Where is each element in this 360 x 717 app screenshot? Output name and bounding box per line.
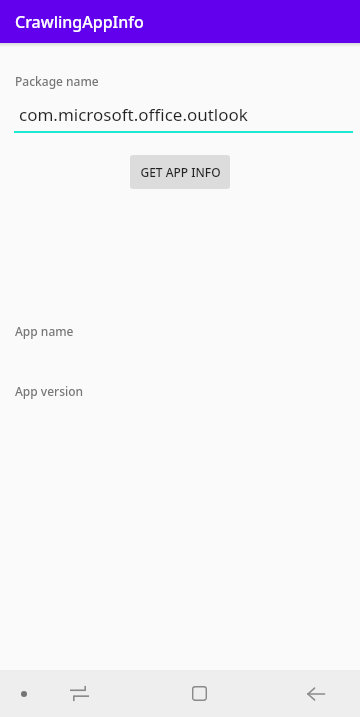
staticText: com.microsoft.office.outlook bbox=[19, 103, 248, 126]
button[interactable]: Menu bbox=[0, 670, 48, 717]
button[interactable]: Recent apps bbox=[171, 670, 227, 717]
button[interactable]: Back bbox=[288, 670, 344, 717]
staticText: CrawlingAppInfo bbox=[15, 11, 144, 33]
button[interactable]: GET APP INFO bbox=[130, 155, 230, 189]
button[interactable]: com.microsoft.office.outlook bbox=[14, 103, 353, 133]
button[interactable]: Switch input method bbox=[48, 670, 110, 717]
staticText: App name bbox=[15, 323, 74, 339]
staticText: Package name bbox=[15, 73, 99, 89]
staticText: GET APP INFO bbox=[140, 164, 221, 180]
staticText: App version bbox=[15, 383, 84, 399]
